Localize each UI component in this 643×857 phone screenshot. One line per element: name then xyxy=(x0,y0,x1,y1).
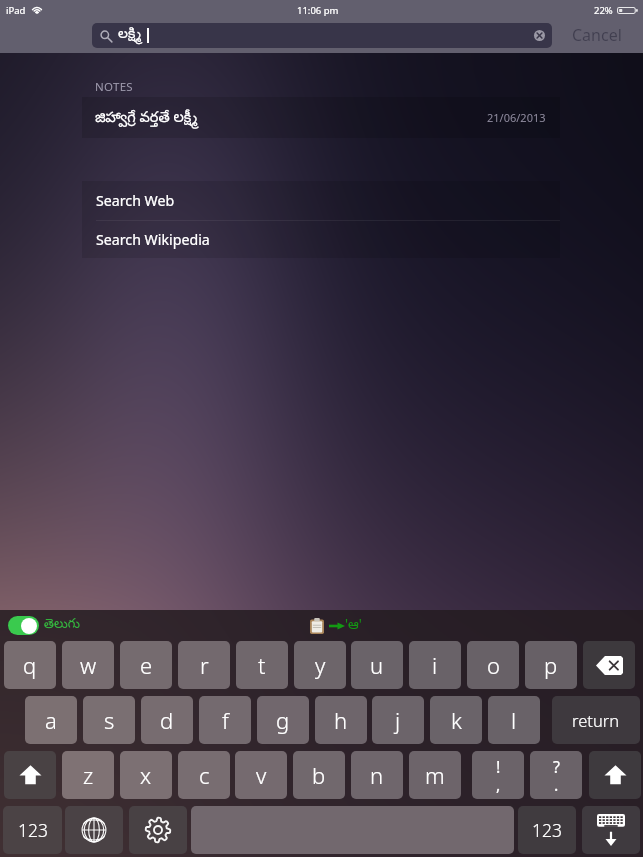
staticText: t xyxy=(258,650,266,680)
button[interactable]: ? xyxy=(530,751,582,799)
staticText: f xyxy=(222,705,229,735)
staticText: జిహ్వాగ్రే వర్తతే లక్ష్మీ xyxy=(95,106,198,129)
staticText: తెలుగు xyxy=(44,617,80,635)
button[interactable]: m xyxy=(409,751,461,799)
staticText: r xyxy=(200,650,209,680)
button[interactable]: d xyxy=(141,696,193,744)
button[interactable]: a xyxy=(25,696,77,744)
staticText: l xyxy=(511,705,517,735)
button[interactable]: Search Web xyxy=(82,181,560,220)
staticText: x xyxy=(140,760,152,790)
staticText: q xyxy=(23,650,37,680)
staticText: u xyxy=(370,650,384,680)
staticText: w xyxy=(80,650,97,680)
button[interactable]: Shift xyxy=(589,751,641,799)
staticText: i xyxy=(432,650,438,680)
button[interactable]: k xyxy=(430,696,482,744)
staticText: Cancel xyxy=(572,24,622,46)
button[interactable]: j xyxy=(372,696,424,744)
button[interactable]: l xyxy=(488,696,540,744)
staticText: 'ఆ' xyxy=(345,615,362,636)
staticText: n xyxy=(370,760,384,790)
staticText: o xyxy=(487,650,500,680)
button[interactable]: w xyxy=(62,641,114,689)
staticText: g xyxy=(276,705,290,735)
button[interactable]: Telugu input toggle xyxy=(8,616,39,635)
staticText: , xyxy=(496,774,501,796)
button[interactable]: q xyxy=(4,641,56,689)
staticText: a xyxy=(45,705,57,735)
button[interactable]: Shift xyxy=(4,751,56,799)
staticText: d xyxy=(160,705,174,735)
staticText: 22% xyxy=(594,4,613,17)
staticText: ! xyxy=(496,756,501,778)
button[interactable]: జిహ్వాగ్రే వర్తతే లక్ష్మీ xyxy=(82,97,560,138)
staticText: Search Wikipedia xyxy=(96,230,210,249)
staticText: c xyxy=(199,760,210,790)
button[interactable]: 123 xyxy=(518,806,576,854)
button[interactable]: s xyxy=(83,696,135,744)
button[interactable]: b xyxy=(293,751,345,799)
staticText: NOTES xyxy=(95,79,133,95)
button[interactable]: r xyxy=(178,641,230,689)
staticText: ? xyxy=(553,756,560,778)
button[interactable]: Hide keyboard xyxy=(582,806,640,854)
button[interactable]: n xyxy=(351,751,403,799)
staticText: 123 xyxy=(532,818,562,842)
button[interactable]: Cancel xyxy=(560,21,633,49)
button[interactable]: h xyxy=(315,696,367,744)
staticText: 21/06/2013 xyxy=(487,110,546,125)
button[interactable]: t xyxy=(236,641,288,689)
staticText: v xyxy=(256,760,267,790)
button[interactable]: Backspace xyxy=(583,641,635,689)
staticText: 123 xyxy=(18,818,48,842)
staticText: s xyxy=(104,705,115,735)
button[interactable]: v xyxy=(235,751,287,799)
staticText: z xyxy=(83,760,94,790)
staticText: j xyxy=(395,705,401,735)
staticText: e xyxy=(140,650,153,680)
button[interactable]: Keyboard settings xyxy=(129,806,187,854)
button[interactable]: return xyxy=(552,696,640,744)
button[interactable]: z xyxy=(62,751,114,799)
staticText: 11:06 pm xyxy=(297,4,339,17)
button[interactable]: i xyxy=(409,641,461,689)
staticText: return xyxy=(572,709,620,731)
button[interactable]: g xyxy=(257,696,309,744)
button[interactable]: Search Wikipedia xyxy=(82,221,560,258)
staticText: లక్ష్మి xyxy=(118,26,142,45)
staticText: p xyxy=(544,650,558,680)
button[interactable]: y xyxy=(294,641,346,689)
button[interactable]: u xyxy=(351,641,403,689)
button[interactable]: f xyxy=(199,696,251,744)
staticText: m xyxy=(425,760,445,790)
button[interactable]: Next keyboard xyxy=(65,806,123,854)
button[interactable]: ! xyxy=(472,751,524,799)
button[interactable]: Clear search text xyxy=(534,30,545,41)
staticText: y xyxy=(315,650,326,680)
staticText: k xyxy=(451,705,462,735)
button[interactable]: c xyxy=(178,751,230,799)
button[interactable]: x xyxy=(120,751,172,799)
button[interactable]: 123 xyxy=(3,806,62,854)
button[interactable]: o xyxy=(467,641,519,689)
staticText: Search Web xyxy=(96,191,175,210)
staticText: b xyxy=(312,760,326,790)
button[interactable]: లక్ష్మి xyxy=(92,23,552,48)
button[interactable]: p xyxy=(525,641,577,689)
button[interactable]: e xyxy=(120,641,172,689)
staticText: h xyxy=(334,705,348,735)
staticText: . xyxy=(554,774,559,796)
staticText: iPad xyxy=(6,4,26,17)
